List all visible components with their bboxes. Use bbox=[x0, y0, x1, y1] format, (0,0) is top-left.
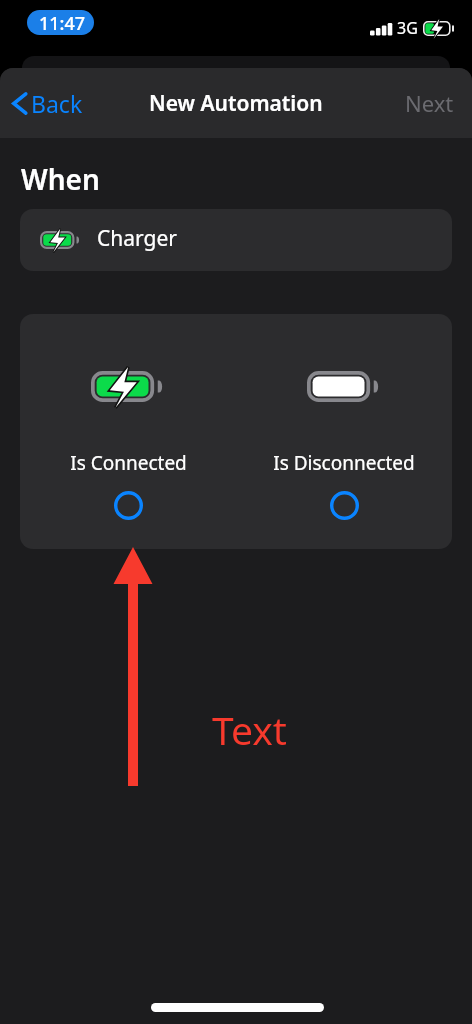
button[interactable]: Is Disconnected bbox=[236, 314, 452, 549]
button[interactable]: Next bbox=[387, 76, 472, 130]
staticText: Text bbox=[212, 703, 287, 756]
staticText: Is Disconnected bbox=[273, 450, 415, 476]
staticText: Is Connected bbox=[70, 450, 187, 476]
staticText: Next bbox=[405, 88, 454, 118]
staticText: 3G bbox=[397, 17, 418, 39]
button[interactable]: Back bbox=[0, 78, 93, 129]
button[interactable]: Is Connected bbox=[20, 314, 236, 549]
staticText: When bbox=[21, 160, 100, 198]
button[interactable]: Charger bbox=[20, 209, 452, 271]
staticText: New Automation bbox=[149, 89, 323, 118]
staticText: 11:47 bbox=[39, 11, 86, 35]
staticText: Charger bbox=[97, 224, 177, 253]
staticText: Back bbox=[31, 88, 83, 119]
